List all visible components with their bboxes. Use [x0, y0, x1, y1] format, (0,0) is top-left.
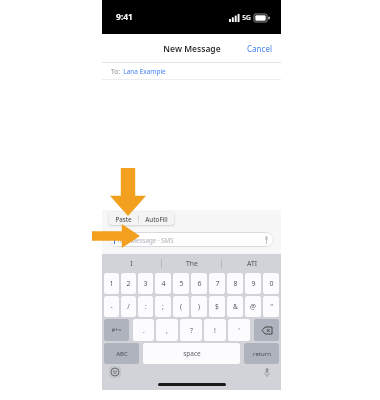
staticText: 8 [233, 279, 238, 289]
staticText: $ [215, 302, 219, 311]
button[interactable]: ) [191, 296, 207, 317]
button[interactable]: $ [209, 296, 225, 317]
button[interactable]: 6 [191, 273, 207, 294]
staticText: ( [180, 302, 182, 311]
button[interactable]: 1 [104, 273, 119, 294]
staticText: AutoFill [145, 215, 168, 223]
staticText: ) [198, 302, 200, 311]
button[interactable]: To: [102, 63, 281, 80]
staticText: Paste [115, 215, 132, 223]
staticText: . [143, 326, 145, 335]
staticText: " [270, 302, 273, 311]
button[interactable]: #+= [104, 319, 129, 341]
staticText: : [145, 302, 147, 311]
staticText: & [233, 302, 238, 311]
button[interactable]: / [121, 296, 136, 317]
staticText: return [253, 350, 271, 358]
staticText: ATI [247, 259, 257, 268]
button[interactable]: AutoFill [139, 212, 174, 225]
button[interactable]: Text Message · SMS [109, 232, 274, 247]
button[interactable]: space [143, 343, 240, 364]
button[interactable]: 0 [263, 273, 279, 294]
staticText: #+= [111, 326, 122, 334]
button[interactable]: 2 [121, 273, 136, 294]
staticText: 3 [143, 279, 148, 289]
staticText: The [186, 259, 198, 268]
staticText: space [183, 349, 201, 358]
button[interactable]: : [138, 296, 153, 317]
staticText: New Message [163, 43, 221, 55]
button[interactable]: The [162, 254, 221, 273]
staticText: 0 [269, 279, 274, 289]
button[interactable]: return [244, 343, 279, 364]
staticText: I [130, 259, 133, 268]
staticText: Cancel [247, 43, 272, 54]
staticText: 5 [179, 279, 184, 289]
staticText: To: [111, 67, 120, 76]
button[interactable]: Emoji [109, 366, 121, 378]
button[interactable]: " [263, 296, 279, 317]
button[interactable]: Paste [109, 212, 138, 225]
staticText: 9 [251, 279, 256, 289]
button[interactable]: 9 [245, 273, 261, 294]
button[interactable]: . [133, 319, 154, 341]
staticText: 9:41 [116, 11, 133, 23]
button[interactable]: 3 [138, 273, 153, 294]
button[interactable]: & [227, 296, 243, 317]
button[interactable]: ? [180, 319, 202, 341]
button[interactable]: Backspace [254, 319, 279, 341]
staticText: ? [190, 326, 193, 335]
button[interactable]: 7 [209, 273, 225, 294]
button[interactable]: I [102, 254, 161, 273]
button[interactable]: ABC [104, 343, 139, 364]
button[interactable]: - [104, 296, 119, 317]
button[interactable]: 5 [173, 273, 189, 294]
button[interactable]: ' [228, 319, 250, 341]
button[interactable]: , [156, 319, 178, 341]
staticText: Lana Example [123, 67, 166, 76]
button[interactable]: 4 [155, 273, 171, 294]
button[interactable]: Dictation [261, 366, 273, 378]
button[interactable]: ! [204, 319, 226, 341]
staticText: Text Message · SMS [117, 236, 174, 244]
button[interactable]: ; [155, 296, 171, 317]
button[interactable]: ( [173, 296, 189, 317]
staticText: ' [238, 326, 240, 335]
staticText: 6 [197, 279, 202, 289]
staticText: ABC [116, 350, 128, 358]
button[interactable]: ATI [222, 254, 281, 273]
staticText: / [127, 302, 130, 311]
staticText: 4 [161, 279, 166, 289]
staticText: - [110, 302, 113, 311]
button[interactable]: @ [245, 296, 261, 317]
other: Audio [264, 236, 269, 244]
staticText: ; [162, 302, 164, 311]
staticText: 1 [109, 279, 114, 289]
button[interactable]: Cancel [238, 38, 281, 59]
staticText: 5G [242, 13, 251, 22]
button[interactable]: 8 [227, 273, 243, 294]
staticText: , [166, 326, 168, 335]
staticText: 7 [215, 279, 220, 289]
staticText: ! [214, 326, 216, 335]
staticText: 2 [126, 279, 131, 289]
staticText: @ [250, 302, 256, 311]
